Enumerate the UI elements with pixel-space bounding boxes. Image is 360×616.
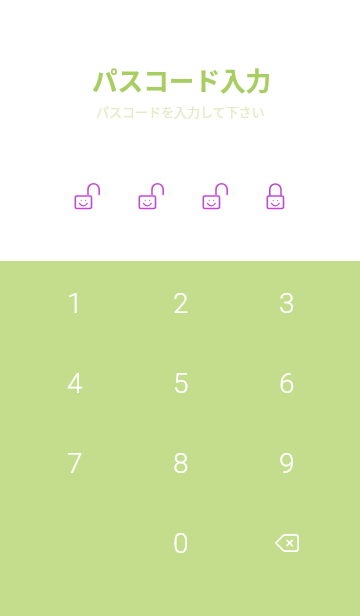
button[interactable]: 3 [234,263,340,343]
button[interactable]: 8 [128,423,234,503]
staticText: 4 [67,367,83,400]
staticText: 6 [279,367,295,400]
staticText: 3 [279,287,295,320]
staticText: パスコードを入力して下さい [96,102,265,121]
staticText: 7 [67,447,83,480]
staticText: パスコード入力 [92,61,272,98]
button[interactable]: 4 [22,343,128,423]
button[interactable]: 6 [234,343,340,423]
staticText: 5 [173,367,189,400]
staticText: 0 [173,527,189,560]
button[interactable]: 2 [128,263,234,343]
staticText: 1 [67,287,83,320]
button[interactable]: 1 [22,263,128,343]
staticText: 9 [279,447,295,480]
button[interactable]: 0 [128,503,234,583]
button[interactable]: 7 [22,423,128,503]
staticText: 8 [173,447,189,480]
button[interactable]: Backspace [234,503,340,583]
button[interactable]: 5 [128,343,234,423]
button[interactable]: 9 [234,423,340,503]
staticText: 2 [173,287,189,320]
other: Backspace [275,534,299,552]
